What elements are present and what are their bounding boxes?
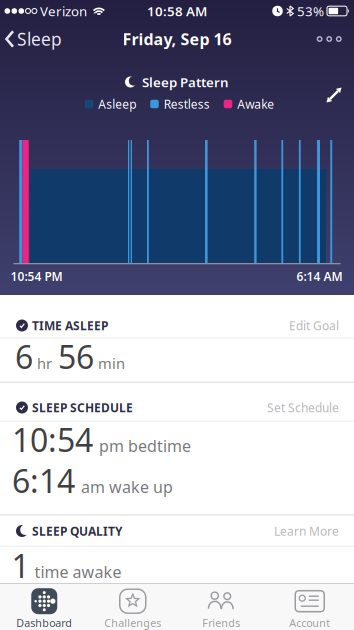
staticText: Dashboard (16, 616, 72, 630)
staticText: am wake up (81, 476, 173, 497)
staticText: pm bedtime (99, 435, 191, 456)
staticText: Learn More (274, 523, 339, 539)
staticText: Asleep (98, 96, 136, 112)
button[interactable] (322, 83, 346, 107)
staticText: 56 (58, 335, 94, 378)
button[interactable]: Dashboard (0, 584, 88, 630)
button[interactable]: Account (265, 584, 354, 630)
staticText: Sleep (17, 27, 62, 50)
staticText: Account (289, 616, 330, 630)
button[interactable]: Edit Goal (289, 317, 339, 333)
staticText: 10:54 PM (10, 268, 62, 284)
button[interactable]: Friends (177, 584, 265, 630)
staticText: 6 (15, 335, 33, 378)
staticText: Sleep Pattern (142, 73, 229, 91)
staticText: Edit Goal (289, 317, 339, 333)
staticText: Awake (237, 96, 274, 112)
staticText: Friday, Sep 16 (122, 28, 231, 50)
staticText: SLEEP SCHEDULE (32, 399, 133, 415)
staticText: Friends (202, 616, 240, 630)
button[interactable]: Sleep (0, 27, 62, 50)
staticText: 10:58 AM (147, 2, 207, 20)
staticText: 6:14 AM (296, 268, 342, 284)
staticText: SLEEP QUALITY (32, 523, 123, 539)
button[interactable]: Challenges (88, 584, 177, 630)
staticText: Set Schedule (267, 399, 339, 415)
staticText: hr (37, 353, 52, 373)
staticText: TIME ASLEEP (32, 317, 108, 333)
staticText: min (98, 353, 125, 373)
button[interactable]: Set Schedule (267, 399, 339, 415)
button[interactable]: Learn More (274, 523, 339, 539)
staticText: 6:14 (12, 459, 75, 502)
staticText: Challenges (104, 616, 161, 630)
staticText: Restless (164, 96, 210, 112)
staticText: 10:54 (12, 418, 93, 461)
button[interactable] (317, 37, 354, 41)
staticText: 1 (11, 544, 29, 587)
staticText: 53% (297, 2, 324, 20)
staticText: Verizon (40, 2, 87, 20)
staticText: time awake (34, 561, 121, 582)
